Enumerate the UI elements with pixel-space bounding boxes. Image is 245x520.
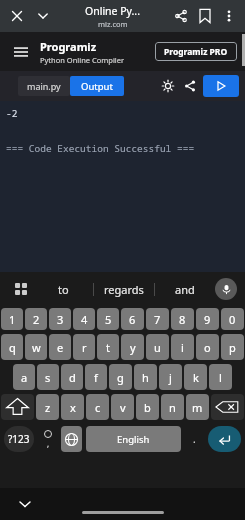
button[interactable]: l [209, 364, 232, 390]
button[interactable]: ?123 [4, 426, 34, 452]
staticText: main.py [27, 80, 61, 92]
staticText: f [94, 370, 98, 385]
button[interactable]: q [1, 334, 23, 360]
staticText: Online Py... [85, 4, 140, 18]
button[interactable]: 9 [196, 308, 219, 330]
button[interactable]: h [134, 364, 157, 390]
button[interactable]: Close [4, 3, 30, 29]
button[interactable]: Programiz PRO [155, 42, 237, 61]
button[interactable]: 3 [49, 308, 71, 330]
staticText: m [192, 400, 203, 415]
button[interactable]: e [49, 334, 71, 360]
staticText: regards [104, 282, 144, 297]
button[interactable]: n [161, 394, 184, 420]
staticText: e [57, 340, 64, 355]
button[interactable]: main.py [18, 76, 70, 96]
staticText: ?123 [8, 432, 30, 446]
button[interactable]: d [61, 364, 83, 390]
button[interactable]: p [221, 334, 244, 360]
staticText: t [106, 340, 110, 355]
staticText: c [95, 400, 101, 415]
staticText: i [181, 340, 184, 355]
staticText: -2 [6, 107, 18, 120]
button[interactable]: v [111, 394, 134, 420]
button[interactable]: Run [203, 75, 239, 97]
button[interactable]: Change language [61, 426, 82, 452]
button[interactable]: i [171, 334, 194, 360]
button[interactable]: r [73, 334, 95, 360]
button[interactable]: j [159, 364, 182, 390]
button[interactable]: 6 [121, 308, 144, 330]
button[interactable]: y [121, 334, 144, 360]
button[interactable]: . [185, 426, 204, 452]
staticText: Python Online Compiler [40, 55, 125, 65]
button[interactable]: Backspace [211, 394, 244, 420]
button[interactable]: b [136, 394, 159, 420]
button[interactable]: Output [70, 76, 124, 96]
staticText: w [32, 340, 41, 355]
button[interactable]: Online Py... [56, 4, 169, 29]
button[interactable]: 7 [146, 308, 169, 330]
staticText: Programiz [40, 39, 97, 54]
staticText: y [130, 340, 136, 355]
button[interactable]: s [37, 364, 59, 390]
button[interactable]: Enter [208, 426, 241, 452]
button[interactable]: t [97, 334, 119, 360]
button[interactable]: x [61, 394, 84, 420]
staticText: 3 [57, 312, 64, 327]
button[interactable]: 4 [73, 308, 95, 330]
staticText: 6 [129, 312, 136, 327]
staticText: 1 [9, 312, 16, 327]
button[interactable]: 8 [171, 308, 194, 330]
button[interactable]: o [196, 334, 219, 360]
staticText: 5 [105, 312, 112, 327]
button[interactable]: 2 [25, 308, 47, 330]
staticText: to [58, 282, 69, 297]
button[interactable]: w [25, 334, 47, 360]
button[interactable]: regards [94, 272, 154, 306]
button[interactable]: and [155, 272, 215, 306]
button[interactable]: Bookmark [193, 4, 217, 28]
button[interactable]: 5 [97, 308, 119, 330]
staticText: k [193, 370, 199, 385]
button[interactable]: k [184, 364, 207, 390]
button[interactable]: Show more [30, 3, 56, 29]
staticText: Programiz PRO [164, 46, 228, 58]
staticText: 0 [229, 312, 236, 327]
button[interactable]: 1 [1, 308, 23, 330]
button[interactable]: Share code [179, 75, 201, 97]
button[interactable]: m [186, 394, 209, 420]
staticText: a [21, 370, 28, 385]
staticText: 9 [204, 312, 211, 327]
button[interactable]: z [36, 394, 59, 420]
staticText: g [117, 370, 124, 385]
button[interactable]: English [86, 426, 181, 452]
button[interactable]: Menu [10, 41, 32, 63]
button[interactable]: f [85, 364, 107, 390]
button[interactable]: Share [169, 4, 193, 28]
staticText: r [82, 340, 87, 355]
button[interactable]: Voice input [215, 278, 237, 300]
button[interactable]: u [146, 334, 169, 360]
button[interactable]: Toolbar [8, 276, 34, 302]
staticText: l [219, 370, 222, 385]
staticText: Output [81, 80, 113, 93]
staticText: o [204, 340, 211, 355]
staticText: === Code Execution Successful === [6, 142, 195, 155]
button[interactable]: Theme [157, 75, 179, 97]
button[interactable]: Emoji [38, 426, 57, 452]
button[interactable]: g [109, 364, 132, 390]
button[interactable]: More options [217, 4, 241, 28]
staticText: u [154, 340, 161, 355]
button[interactable]: a [13, 364, 35, 390]
staticText: b [144, 400, 151, 415]
button[interactable]: to [34, 272, 93, 306]
staticText: q [9, 340, 16, 355]
staticText: d [69, 370, 76, 385]
button[interactable]: c [86, 394, 109, 420]
button[interactable]: 0 [221, 308, 244, 330]
button[interactable]: Shift [1, 394, 34, 420]
staticText: 7 [154, 312, 161, 327]
button[interactable]: Hide keyboard [16, 495, 34, 513]
staticText: and [175, 282, 195, 297]
